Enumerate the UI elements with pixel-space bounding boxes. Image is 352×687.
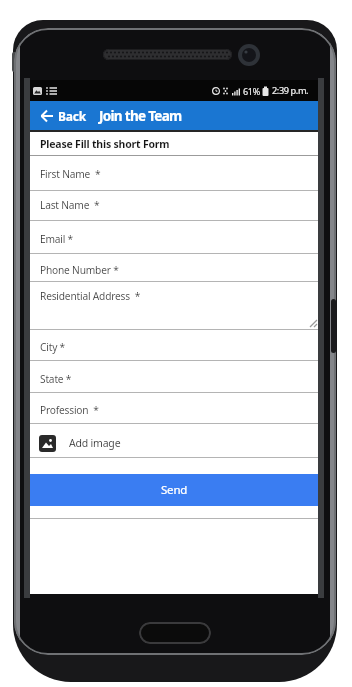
button[interactable]: [30, 156, 318, 189]
button[interactable]: [30, 392, 318, 423]
staticText: City *: [40, 340, 66, 354]
staticText: Phone Number *: [40, 263, 119, 277]
staticText: 2:39 p.m.: [272, 84, 309, 97]
button[interactable]: [30, 190, 318, 220]
button[interactable]: Add image: [30, 429, 318, 457]
button[interactable]: [30, 281, 318, 329]
staticText: Join the Team: [99, 107, 182, 125]
staticText: Back: [58, 108, 87, 124]
staticText: Last Name *: [40, 198, 100, 212]
button[interactable]: [30, 253, 318, 281]
staticText: Residential Address *: [40, 289, 141, 303]
staticText: Profession *: [40, 403, 99, 417]
staticText: Please Fill this short Form: [40, 137, 170, 151]
staticText: Add image: [69, 436, 121, 450]
staticText: State *: [40, 372, 72, 386]
button[interactable]: [30, 220, 318, 253]
button[interactable]: [139, 622, 211, 644]
staticText: 61%: [243, 85, 260, 97]
button[interactable]: [30, 329, 318, 360]
staticText: Send: [161, 482, 188, 498]
button[interactable]: Back: [30, 101, 182, 130]
staticText: Email *: [40, 232, 74, 246]
staticText: First Name *: [40, 167, 101, 181]
button[interactable]: Send: [30, 474, 318, 506]
button[interactable]: [30, 360, 318, 392]
